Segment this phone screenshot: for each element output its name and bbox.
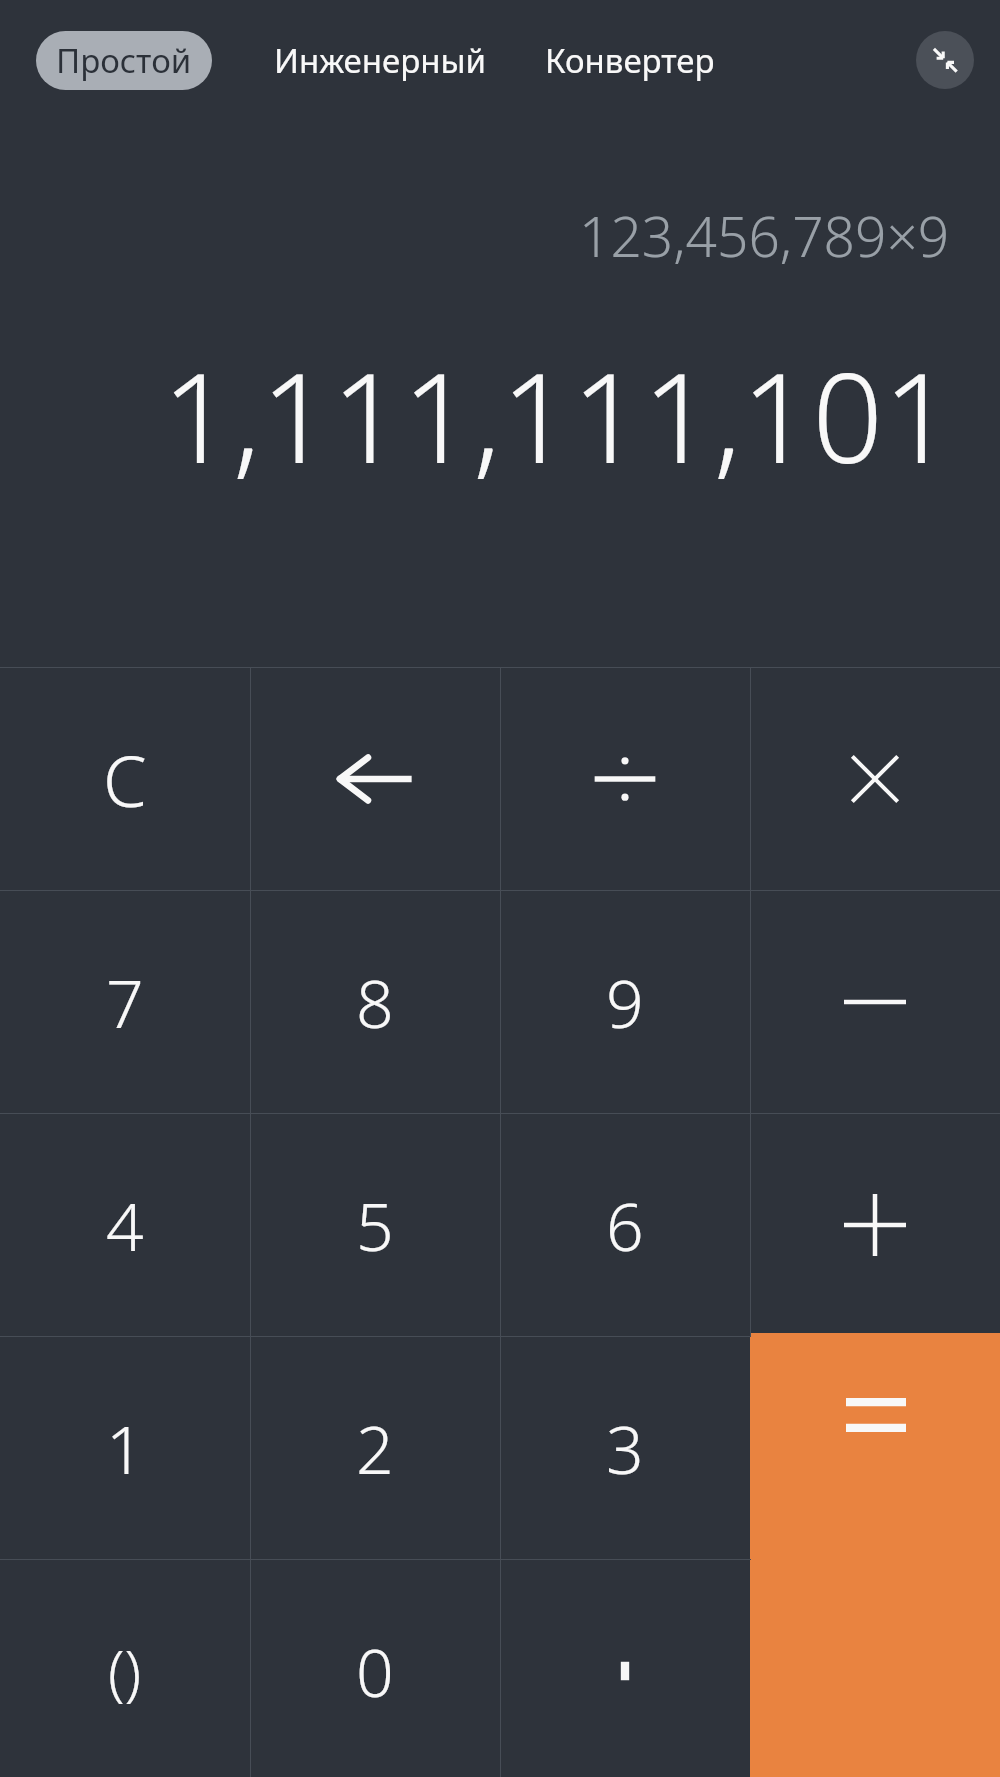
- staticText: 1: [106, 1403, 144, 1493]
- staticText: C: [103, 732, 147, 827]
- staticText: 4: [106, 1180, 144, 1270]
- button[interactable]: 9: [500, 891, 750, 1113]
- button[interactable]: Конвертер: [545, 28, 715, 93]
- staticText: 9: [606, 957, 644, 1047]
- staticText: Конвертер: [545, 38, 715, 83]
- staticText: Простой: [56, 38, 192, 83]
- button[interactable]: Multiply: [750, 668, 1000, 890]
- staticText: 5: [356, 1180, 394, 1270]
- button[interactable]: Clear: [0, 668, 250, 890]
- staticText: 0: [356, 1626, 394, 1716]
- staticText: 8: [356, 957, 394, 1047]
- button[interactable]: Decimal point: [500, 1560, 750, 1777]
- staticText: 2: [356, 1403, 394, 1493]
- staticText: Инженерный: [274, 38, 487, 83]
- staticText: 123,456,789×9: [579, 198, 950, 273]
- button[interactable]: 2: [250, 1337, 500, 1559]
- staticText: (): [108, 1630, 142, 1712]
- button[interactable]: Equals: [751, 1333, 1000, 1777]
- button[interactable]: Collapse: [916, 31, 974, 89]
- button[interactable]: 7: [0, 891, 250, 1113]
- button[interactable]: 0: [250, 1560, 500, 1777]
- staticText: 7: [106, 957, 144, 1047]
- button[interactable]: Простой: [36, 31, 212, 90]
- button[interactable]: 3: [500, 1337, 750, 1559]
- button[interactable]: Plus: [750, 1114, 1000, 1336]
- button[interactable]: Инженерный: [274, 28, 487, 93]
- button[interactable]: 6: [500, 1114, 750, 1336]
- staticText: 1,111,111,101: [162, 330, 954, 499]
- button[interactable]: Parentheses: [0, 1560, 250, 1777]
- button[interactable]: 5: [250, 1114, 500, 1336]
- button[interactable]: 1: [0, 1337, 250, 1559]
- button[interactable]: [750, 1337, 1000, 1559]
- button[interactable]: Backspace: [250, 668, 500, 890]
- staticText: 3: [606, 1403, 644, 1493]
- staticText: 6: [606, 1180, 644, 1270]
- button[interactable]: Minus: [750, 891, 1000, 1113]
- button[interactable]: 8: [250, 891, 500, 1113]
- button[interactable]: Divide: [500, 668, 750, 890]
- button[interactable]: 4: [0, 1114, 250, 1336]
